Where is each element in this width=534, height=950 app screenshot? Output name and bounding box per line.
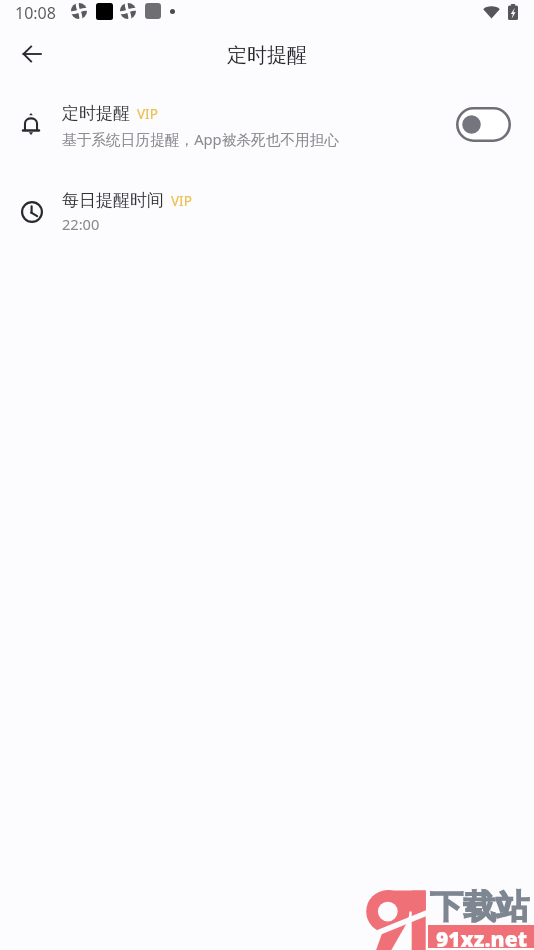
button[interactable]: 定时提醒 bbox=[0, 94, 534, 158]
staticText: 每日提醒时间 bbox=[62, 190, 164, 211]
staticText: 22:00 bbox=[62, 214, 100, 234]
staticText: 91xz.net bbox=[436, 925, 528, 948]
button[interactable]: Toggle timed reminder bbox=[455, 106, 511, 142]
staticText: 下载站 bbox=[430, 886, 529, 928]
button[interactable]: Back bbox=[10, 32, 54, 76]
staticText: 定时提醒 bbox=[227, 43, 307, 68]
button[interactable]: 每日提醒时间 bbox=[0, 180, 534, 244]
staticText: VIP bbox=[137, 105, 158, 123]
staticText: 基于系统日历提醒，App被杀死也不用担心 bbox=[62, 129, 340, 149]
staticText: 10:08 bbox=[15, 2, 56, 24]
staticText: VIP bbox=[171, 192, 192, 210]
staticText: 定时提醒 bbox=[62, 103, 130, 124]
